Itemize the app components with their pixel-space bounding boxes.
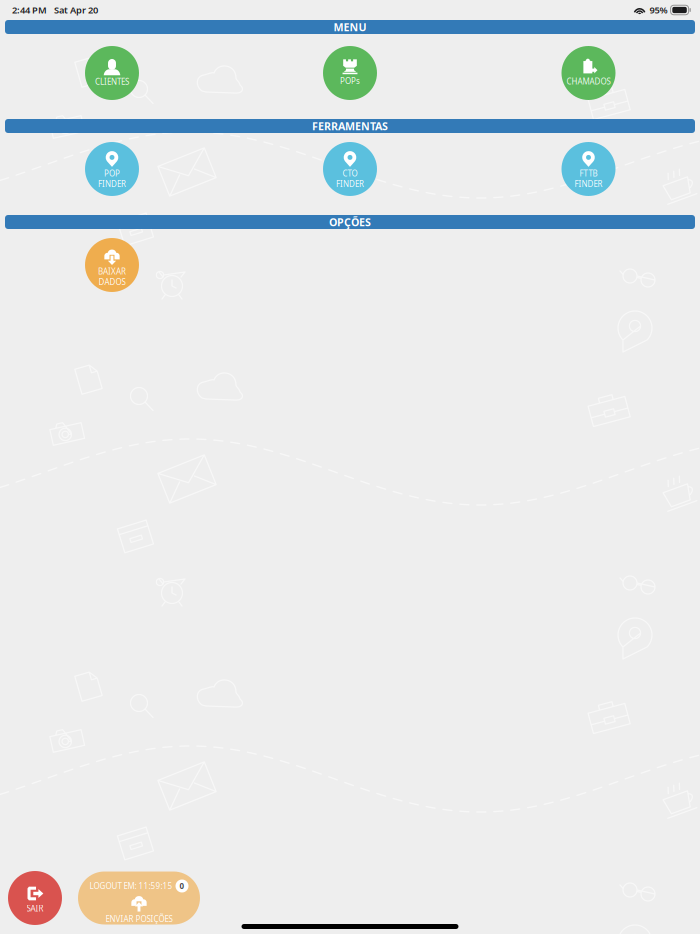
button[interactable]: FTTB Finder [561, 142, 615, 196]
staticText: CHAMADOS [566, 76, 610, 87]
staticText: MENU [333, 20, 366, 34]
button[interactable]: Chamados [561, 46, 615, 100]
staticText: ENVIAR POSIÇÕES [105, 913, 172, 924]
staticText: FINDER [574, 179, 602, 189]
staticText: BAIXAR [98, 266, 126, 277]
staticText: Sat Apr 20 [54, 4, 98, 16]
staticText: CTO [342, 168, 357, 179]
staticText: LOGOUT EM: 11:59:15 [89, 881, 172, 891]
staticText: FINDER [98, 179, 126, 189]
button[interactable]: CTO Finder [323, 142, 377, 196]
button[interactable]: Enviar posições [78, 871, 200, 924]
staticText: SAIR [26, 903, 43, 914]
staticText: POPs [340, 75, 360, 86]
staticText: FERRAMENTAS [312, 119, 388, 133]
staticText: OPÇÕES [329, 215, 371, 229]
staticText: FTTB [579, 168, 597, 179]
staticText: DADOS [98, 277, 125, 287]
staticText: CLIENTES [95, 76, 129, 87]
button[interactable]: Clientes [85, 46, 139, 100]
button[interactable]: Baixar dados [85, 238, 139, 292]
staticText: FINDER [336, 179, 364, 189]
button[interactable]: Sair [8, 871, 62, 925]
staticText: 0 [179, 881, 184, 891]
staticText: 95% [650, 4, 668, 16]
button[interactable]: POP Finder [85, 142, 139, 196]
staticText: 2:44 PM [12, 4, 47, 16]
button[interactable]: POPs [323, 46, 377, 100]
staticText: POP [104, 168, 120, 179]
